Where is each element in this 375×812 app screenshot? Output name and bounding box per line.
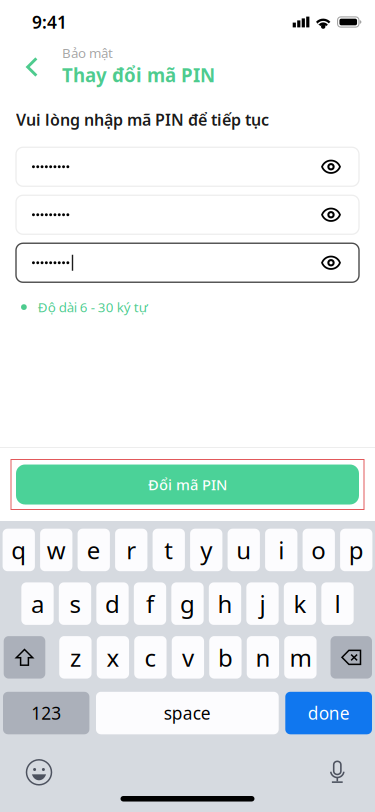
staticText: Vui lòng nhập mã PIN để tiếp tục: [16, 109, 269, 130]
staticText: r: [126, 534, 136, 566]
button[interactable]: Back: [10, 45, 54, 89]
staticText: Độ dài 6 - 30 ký tự: [38, 298, 148, 316]
button[interactable]: Delete: [330, 636, 372, 679]
staticText: space: [164, 701, 211, 724]
staticText: p: [349, 534, 364, 566]
staticText: x: [106, 641, 119, 673]
button[interactable]: Show PIN: [316, 247, 346, 279]
button[interactable]: x: [97, 636, 129, 679]
staticText: k: [293, 588, 306, 620]
staticText: o: [311, 534, 326, 566]
button[interactable]: m: [284, 636, 317, 679]
button[interactable]: r: [115, 529, 147, 571]
button[interactable]: w: [40, 529, 72, 571]
button[interactable]: Show PIN: [316, 151, 346, 183]
staticText: m: [289, 641, 311, 673]
staticText: a: [31, 588, 44, 620]
staticText: h: [217, 588, 232, 620]
button[interactable]: 123: [3, 692, 89, 734]
button[interactable]: c: [134, 636, 167, 679]
button[interactable]: p: [340, 529, 372, 571]
staticText: f: [146, 588, 154, 620]
staticText: 9:41: [32, 10, 67, 33]
staticText: s: [69, 588, 80, 620]
button[interactable]: j: [246, 582, 279, 625]
button[interactable]: y: [190, 529, 222, 571]
staticText: w: [47, 534, 66, 566]
button[interactable]: z: [59, 636, 92, 679]
staticText: 123: [31, 701, 61, 724]
button[interactable]: [16, 243, 359, 282]
staticText: q: [11, 534, 26, 566]
button[interactable]: Emoji keyboard: [22, 757, 56, 787]
button[interactable]: v: [172, 636, 204, 679]
staticText: Thay đổi mã PIN: [62, 63, 215, 87]
button[interactable]: t: [153, 529, 185, 571]
staticText: g: [180, 588, 195, 620]
staticText: i: [278, 534, 284, 566]
button[interactable]: u: [228, 529, 260, 571]
staticText: y: [200, 534, 212, 566]
button[interactable]: b: [209, 636, 242, 679]
staticText: t: [164, 534, 173, 566]
staticText: e: [87, 534, 101, 566]
button[interactable]: a: [21, 582, 54, 625]
staticText: Bảo mật: [62, 44, 113, 62]
button[interactable]: o: [303, 529, 335, 571]
button[interactable]: s: [59, 582, 91, 625]
button[interactable]: n: [247, 636, 279, 679]
button[interactable]: f: [134, 582, 166, 625]
button[interactable]: h: [209, 582, 241, 625]
staticText: j: [259, 588, 265, 620]
button[interactable]: i: [265, 529, 297, 571]
button[interactable]: l: [321, 582, 354, 625]
staticText: l: [334, 588, 340, 620]
button[interactable]: Shift: [4, 636, 45, 679]
staticText: v: [182, 641, 194, 673]
button[interactable]: [16, 195, 359, 234]
button[interactable]: Show PIN: [316, 199, 346, 231]
staticText: d: [105, 588, 120, 620]
button[interactable]: Dictation: [324, 757, 354, 787]
staticText: u: [236, 534, 251, 566]
staticText: Đổi mã PIN: [148, 475, 227, 494]
button[interactable]: [16, 147, 359, 186]
button[interactable]: done: [285, 692, 372, 734]
staticText: n: [255, 641, 270, 673]
staticText: b: [218, 641, 233, 673]
button[interactable]: k: [284, 582, 316, 625]
button[interactable]: d: [96, 582, 129, 625]
staticText: done: [308, 701, 350, 724]
button[interactable]: g: [171, 582, 204, 625]
button[interactable]: q: [3, 529, 35, 571]
staticText: c: [144, 641, 156, 673]
button[interactable]: e: [78, 529, 110, 571]
button[interactable]: space: [96, 692, 279, 734]
staticText: z: [70, 641, 81, 673]
button[interactable]: Đổi mã PIN: [0, 459, 375, 509]
